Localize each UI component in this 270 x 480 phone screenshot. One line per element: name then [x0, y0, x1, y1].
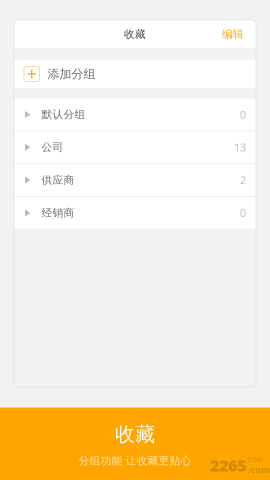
button[interactable]: 编辑 [222, 22, 256, 47]
staticText: 2 [240, 173, 246, 187]
staticText: 手游网 [247, 457, 262, 463]
staticText: 0 [240, 206, 246, 220]
staticText: 添加分组 [47, 67, 95, 81]
staticText: 编辑 [222, 28, 244, 41]
staticText: 0 [240, 107, 246, 122]
button[interactable]: 经销商 [14, 197, 256, 229]
staticText: 分组功能 让收藏更贴心 [78, 454, 191, 467]
button[interactable]: 公司 [14, 131, 256, 163]
button[interactable]: 供应商 [14, 164, 256, 196]
staticText: 收藏 [115, 422, 155, 447]
staticText: 供应商 [41, 173, 74, 187]
staticText: 2265 [210, 455, 246, 476]
staticText: 公司 [41, 141, 63, 154]
staticText: 经销商 [41, 206, 74, 219]
button[interactable]: 默认分组 [14, 98, 256, 130]
staticText: .com [247, 463, 270, 475]
staticText: 13 [234, 140, 246, 154]
staticText: 收藏 [124, 28, 146, 41]
button[interactable]: 添加分组 [14, 59, 256, 88]
staticText: 默认分组 [41, 108, 85, 121]
